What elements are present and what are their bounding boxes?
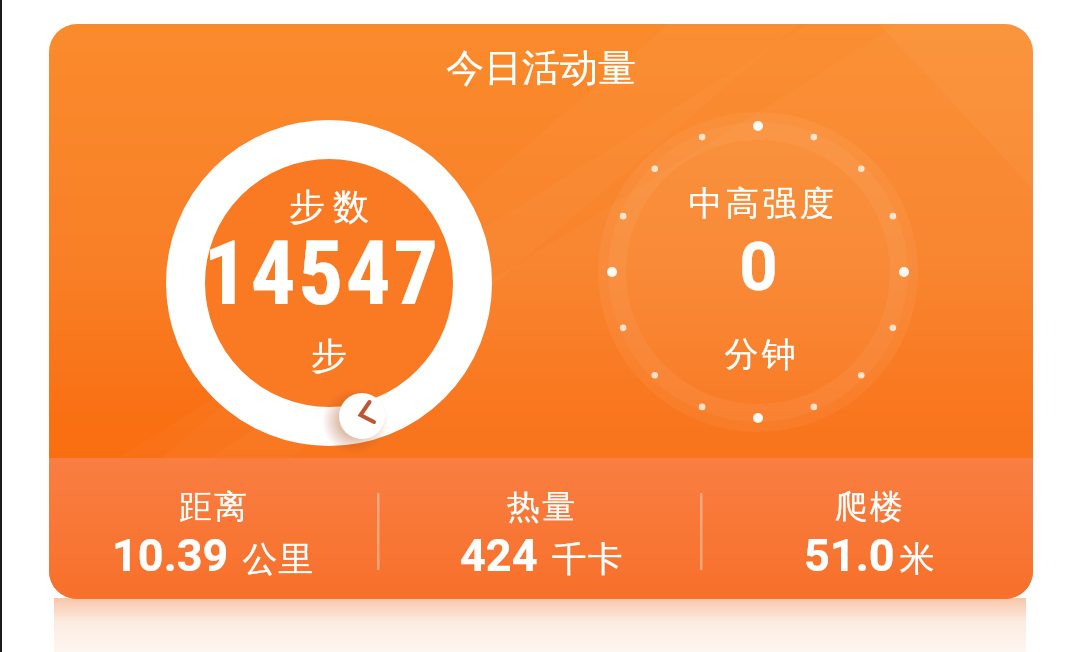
staticText: 热量 bbox=[506, 486, 576, 528]
staticText: 14547 bbox=[203, 221, 441, 325]
button[interactable]: 热量 bbox=[377, 458, 705, 599]
staticText: 分钟 bbox=[723, 333, 797, 376]
button[interactable]: 今日活动量 bbox=[49, 24, 1033, 599]
staticText: 0 bbox=[739, 228, 778, 307]
button[interactable]: 爬楼 bbox=[705, 458, 1033, 599]
staticText: 距离 bbox=[178, 486, 248, 528]
staticText: 51.0 bbox=[804, 529, 895, 582]
staticText: 爬楼 bbox=[834, 486, 904, 528]
staticText: 10.39 bbox=[112, 529, 229, 582]
staticText: 千卡 bbox=[551, 537, 623, 581]
staticText: 今日活动量 bbox=[446, 44, 636, 92]
staticText: 中高强度 bbox=[687, 182, 835, 225]
staticText: 米 bbox=[899, 537, 935, 581]
staticText: 步 bbox=[311, 333, 347, 378]
button[interactable]: 距离 bbox=[49, 458, 377, 599]
staticText: 步数 bbox=[285, 184, 373, 229]
staticText: 424 bbox=[460, 529, 538, 582]
staticText: 公里 bbox=[242, 537, 314, 581]
